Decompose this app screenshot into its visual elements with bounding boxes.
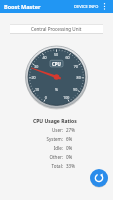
staticText: DEVICE INFO: [74, 4, 99, 9]
staticText: System:: [22, 136, 63, 142]
staticText: Idle:: [22, 145, 63, 151]
button[interactable]: [101, 2, 113, 11]
button[interactable]: [90, 169, 108, 187]
staticText: 0%: [66, 145, 73, 151]
button[interactable]: DEVICE INFO: [72, 1, 101, 12]
staticText: Boost Master: [4, 3, 41, 10]
button[interactable]: Central Processing Unit: [10, 24, 103, 34]
staticText: User:: [22, 127, 63, 133]
staticText: 6%: [66, 136, 73, 142]
staticText: Other:: [22, 154, 63, 160]
staticText: 33%: [66, 163, 75, 169]
staticText: Total:: [22, 163, 63, 169]
staticText: 27%: [66, 127, 75, 133]
staticText: CPU Usage Ratios: [33, 118, 77, 125]
staticText: Central Processing Unit: [31, 26, 82, 32]
staticText: 0%: [66, 154, 73, 160]
